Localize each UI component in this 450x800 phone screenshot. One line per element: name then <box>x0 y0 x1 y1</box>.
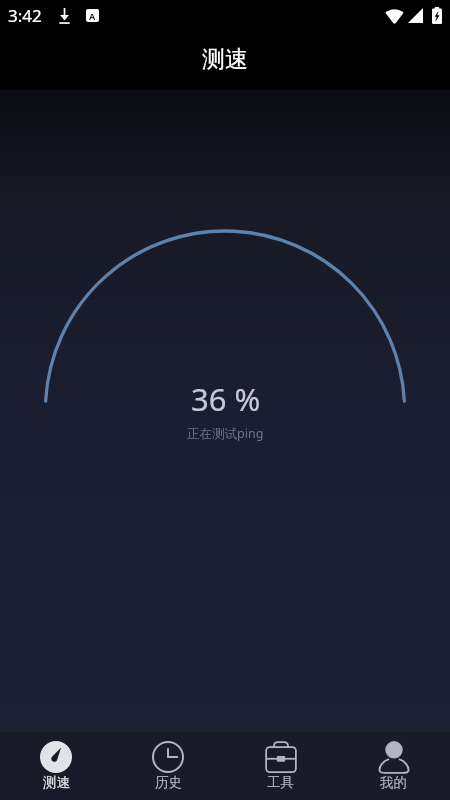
staticText: 历史 <box>155 774 182 791</box>
button[interactable]: 测速 <box>0 732 112 800</box>
staticText: A <box>89 10 96 22</box>
staticText: 测速 <box>202 45 248 74</box>
button[interactable]: 历史 <box>112 732 224 800</box>
button[interactable]: 我的 <box>337 732 450 800</box>
staticText: 3:42 <box>8 4 42 27</box>
button[interactable]: 工具 <box>224 732 337 800</box>
staticText: 测速 <box>43 774 70 791</box>
staticText: 工具 <box>267 774 294 791</box>
staticText: 36 % <box>191 378 261 420</box>
staticText: 正在测试ping <box>187 425 264 442</box>
staticText: 我的 <box>380 774 407 791</box>
